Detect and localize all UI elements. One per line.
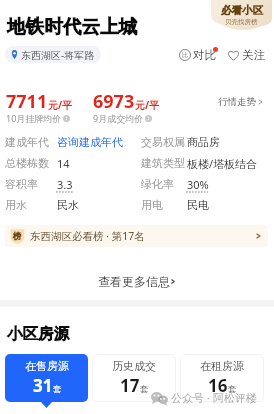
staticText: 在租房源 [200,359,244,373]
staticText: 元/平 [135,98,160,112]
staticText: 14 [57,156,70,171]
staticText: 建成年代 [5,135,49,149]
staticText: 必看小区 [221,4,263,17]
staticText: 套 [228,384,237,395]
staticText: 6973 [93,89,135,114]
button[interactable]: 比 [178,48,217,62]
staticText: 查看更多信息 [98,274,170,289]
button[interactable]: 在租房源 [180,354,264,402]
staticText: 16 [208,374,228,397]
staticText: 民水 [57,198,79,212]
staticText: 对比 [193,48,216,62]
staticText: 东西湖区-将军路 [21,48,95,62]
staticText: 比 [182,51,188,59]
staticText: 东西湖区必看榜 · 第17名 [30,229,145,243]
staticText: 31 [33,374,53,397]
staticText: 17 [120,374,140,397]
button[interactable]: 关注 [226,48,266,62]
staticText: 民电 [187,198,209,212]
button[interactable]: 行情走势 [216,94,266,110]
staticText: 历史成交 [112,359,156,373]
staticText: 商品房 [187,135,220,149]
staticText: 容积率 [5,177,38,191]
button[interactable]: 在售房源 [5,354,88,402]
staticText: 榜 [13,231,22,242]
staticText: 绿化率 [141,177,174,191]
staticText: 建筑类型 [141,156,185,170]
staticText: 小区房源 [7,324,69,344]
staticText: 30% [187,177,209,192]
staticText: 公众号 · 阿松评楼 [171,390,257,405]
staticText: 地铁时代云上城 [7,15,138,38]
staticText: 板楼/塔板结合 [187,156,258,171]
staticText: 套 [53,384,62,395]
staticText: 用电 [141,198,163,212]
button[interactable]: 历史成交 [92,354,176,402]
staticText: 7711 [6,89,48,114]
button[interactable]: 查看更多信息 [0,270,274,292]
staticText: 套 [140,384,149,395]
staticText: 咨询建成年代 [57,135,123,149]
staticText: 交易权属 [141,135,185,149]
staticText: 用水 [5,198,27,212]
staticText: 10月挂牌均价 [6,112,62,124]
staticText: 3.3 [57,177,73,192]
staticText: 元/平 [48,98,73,112]
button[interactable]: 榜 [5,225,268,247]
staticText: 总楼栋数 [5,156,49,170]
staticText: 在售房源 [25,359,69,373]
button[interactable]: 东西湖区-将军路 [5,46,101,63]
staticText: 9月成交均价 [93,112,144,124]
staticText: 贝壳找房榜 [225,18,258,26]
staticText: 行情走势 [218,96,256,108]
staticText: 关注 [242,48,265,62]
